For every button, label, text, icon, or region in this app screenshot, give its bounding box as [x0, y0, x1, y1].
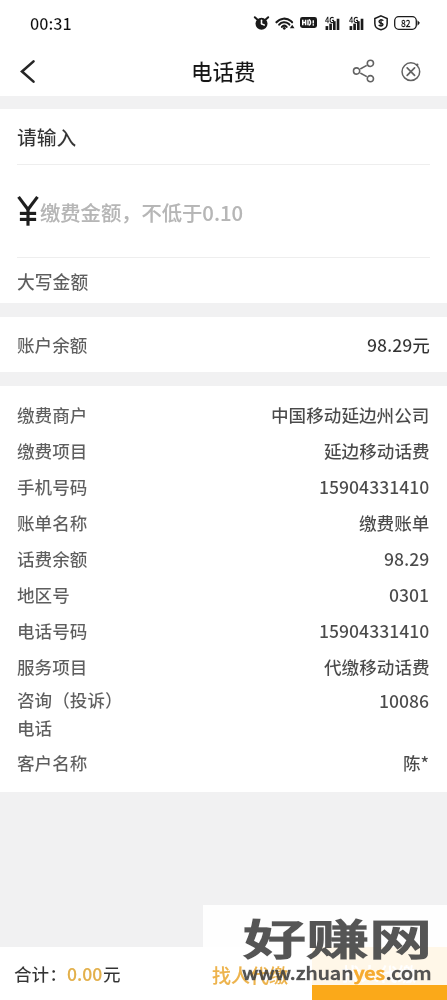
button[interactable]: Close: [389, 49, 433, 93]
staticText: 请输入: [17, 122, 77, 151]
staticText: 98.29: [384, 546, 430, 571]
button[interactable]: 账户余额: [0, 317, 447, 372]
staticText: 电话费: [191, 55, 256, 86]
staticText: 缴费账单: [359, 510, 430, 535]
button[interactable]: Back: [6, 49, 50, 93]
staticText: www.zhuan: [242, 960, 354, 985]
staticText: 陈*: [403, 750, 430, 775]
staticText: 4G: [325, 14, 335, 25]
staticText: 手机号码: [17, 474, 88, 499]
staticText: 大写金额: [17, 268, 89, 294]
staticText: 元: [103, 961, 121, 986]
staticText: 话费余额: [17, 546, 88, 571]
staticText: 账户余额: [17, 332, 88, 357]
staticText: 代缴移动话费: [324, 654, 430, 679]
staticText: 账单名称: [17, 510, 88, 535]
staticText: 客户名称: [17, 750, 88, 775]
staticText: 找人代缴: [342, 960, 417, 987]
staticText: 00:31: [30, 11, 72, 34]
staticText: 电话: [17, 715, 53, 740]
staticText: 合计：: [14, 961, 67, 986]
staticText: 咨询（投诉）: [17, 687, 123, 712]
staticText: 缴费商户: [17, 402, 88, 427]
staticText: 15904331410: [319, 474, 430, 499]
staticText: 98.29元: [367, 332, 430, 357]
button[interactable]: Share: [341, 49, 385, 93]
staticText: 找人代缴: [212, 961, 289, 989]
staticText: 延边移动话费: [324, 438, 430, 463]
button[interactable]: 找人代缴: [312, 947, 447, 1000]
staticText: 服务项目: [17, 654, 88, 679]
staticText: 缴费金额，不低于0.10: [40, 197, 244, 226]
staticText: 电话号码: [17, 618, 88, 643]
staticText: yes: [354, 960, 386, 985]
staticText: 4G: [349, 14, 359, 25]
staticText: 0.00: [67, 961, 103, 986]
staticText: 0301: [389, 582, 430, 607]
staticText: 15904331410: [319, 618, 430, 643]
staticText: 地区号: [17, 582, 70, 607]
staticText: .com: [386, 960, 432, 985]
staticText: 缴费项目: [17, 438, 88, 463]
staticText: 好赚网: [243, 906, 433, 967]
staticText: 中国移动延边州公司: [271, 402, 430, 427]
staticText: 10086: [379, 688, 430, 713]
staticText: 82: [401, 17, 411, 29]
